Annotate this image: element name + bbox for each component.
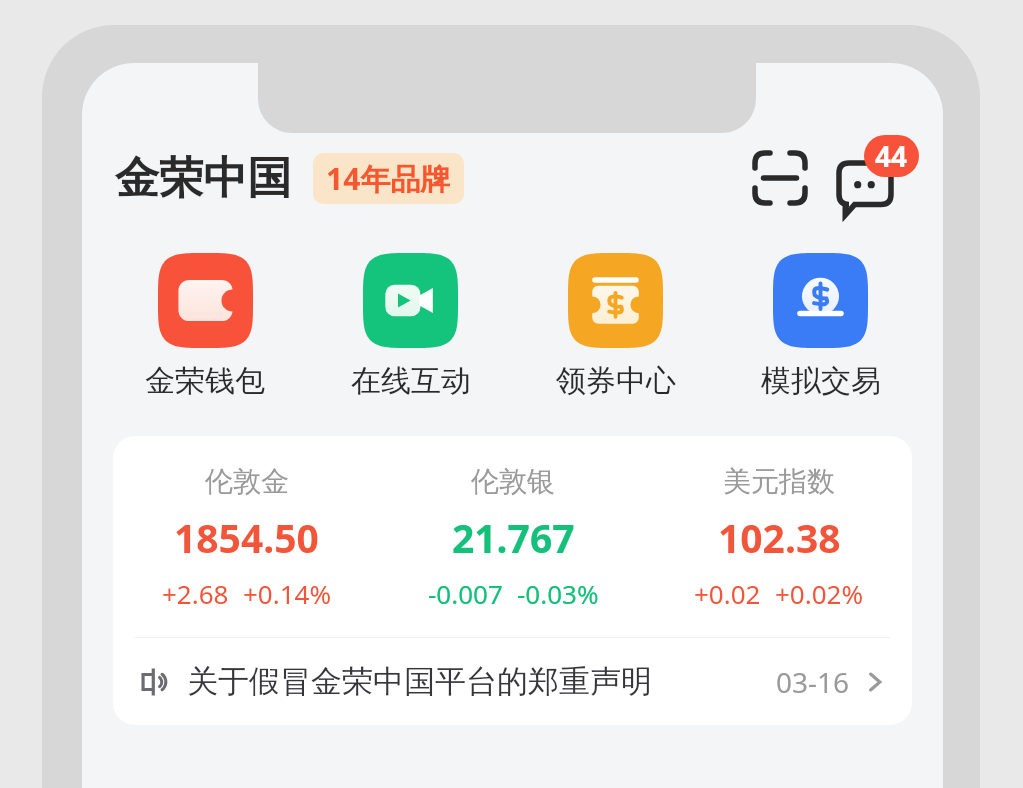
staticText: -0.007 bbox=[428, 576, 503, 611]
button[interactable]: Scan bbox=[751, 149, 809, 207]
button[interactable]: 伦敦金 bbox=[113, 464, 380, 611]
staticText: 在线互动 bbox=[351, 362, 471, 400]
button[interactable]: 关于假冒金荣中国平台的郑重声明 bbox=[113, 638, 912, 725]
staticText: 102.38 bbox=[718, 511, 841, 564]
staticText: 14年品牌 bbox=[326, 158, 451, 199]
staticText: 1854.50 bbox=[174, 511, 319, 564]
button[interactable]: 领券中心 bbox=[513, 253, 718, 400]
staticText: +0.02% bbox=[775, 576, 864, 611]
staticText: 金荣中国 bbox=[115, 151, 291, 206]
button[interactable]: 金荣钱包 bbox=[102, 253, 308, 400]
staticText: +0.14% bbox=[243, 576, 332, 611]
button[interactable]: 伦敦银 bbox=[380, 464, 646, 611]
staticText: 模拟交易 bbox=[761, 362, 881, 400]
button[interactable]: 在线互动 bbox=[308, 253, 513, 400]
staticText: -0.03% bbox=[517, 576, 599, 611]
staticText: 伦敦银 bbox=[471, 464, 555, 499]
staticText: 21.767 bbox=[452, 511, 575, 564]
staticText: 44 bbox=[875, 137, 908, 175]
button[interactable]: Messages, 44 unread bbox=[839, 141, 913, 215]
button[interactable]: 美元指数 bbox=[646, 464, 912, 611]
staticText: 领券中心 bbox=[556, 362, 676, 400]
staticText: 03-16 bbox=[776, 663, 850, 701]
staticText: 金荣钱包 bbox=[145, 362, 265, 400]
button[interactable]: 模拟交易 bbox=[718, 253, 923, 400]
staticText: 关于假冒金荣中国平台的郑重声明 bbox=[187, 662, 652, 701]
staticText: +0.02 bbox=[694, 576, 761, 611]
staticText: 美元指数 bbox=[723, 464, 835, 499]
staticText: +2.68 bbox=[162, 576, 229, 611]
staticText: 伦敦金 bbox=[205, 464, 289, 499]
